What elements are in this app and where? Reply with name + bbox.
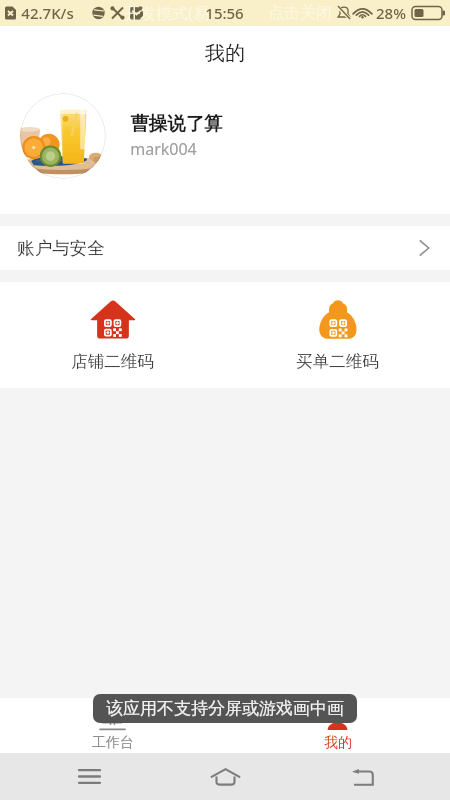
button[interactable]: Home — [157, 753, 294, 800]
button[interactable]: 工作台 — [0, 698, 225, 753]
staticText: 我的 — [205, 41, 245, 66]
staticText: 曹操说了算 — [130, 112, 223, 135]
button[interactable]: 账户与安全 — [0, 226, 450, 270]
button[interactable]: 店铺二维码 — [0, 282, 225, 388]
staticText: 买单二维码 — [296, 351, 379, 372]
button[interactable]: 曹操说了算 — [0, 80, 450, 214]
button[interactable]: 我的 — [225, 698, 450, 753]
staticText: 该应用不支持分屏或游戏画中画 — [106, 698, 344, 719]
staticText: mark004 — [130, 138, 197, 160]
button[interactable]: Back — [294, 753, 431, 800]
button[interactable]: 买单二维码 — [225, 282, 450, 388]
staticText: 工作台 — [92, 734, 134, 752]
staticText: 42.7K/s — [21, 3, 74, 23]
staticText: 开发模式(易 — [124, 2, 209, 24]
staticText: 15:56 — [205, 3, 244, 23]
button[interactable]: Recent apps — [43, 753, 134, 800]
staticText: 账户与安全 — [17, 237, 105, 259]
staticText: 28% — [376, 3, 406, 23]
staticText: 点击关闭 — [268, 3, 332, 23]
staticText: 我的 — [324, 734, 352, 752]
staticText: 店铺二维码 — [71, 351, 154, 372]
